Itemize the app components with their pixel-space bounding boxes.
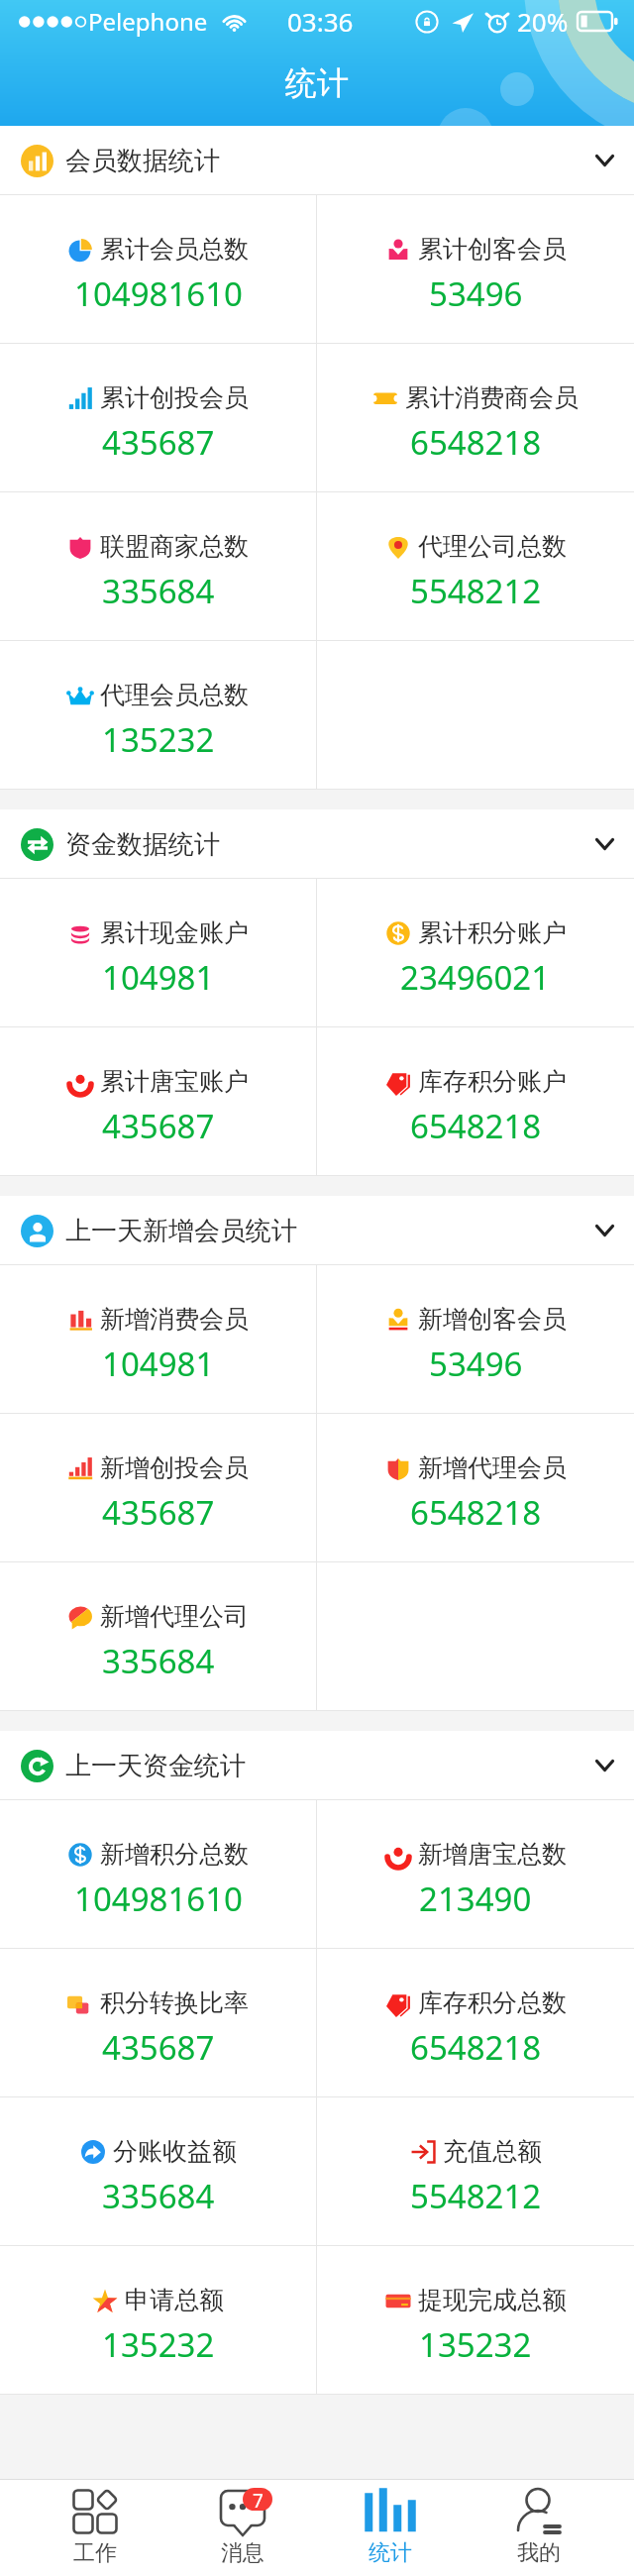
staticText: 代理会员总数	[100, 680, 249, 710]
staticText: 分账收益额	[113, 2136, 237, 2167]
button[interactable]: 申请总额	[0, 2246, 316, 2395]
staticText: 新增积分总数	[100, 1839, 249, 1870]
button[interactable]: 累计会员总数	[0, 195, 316, 344]
staticText: 提现完成总额	[418, 2285, 567, 2315]
button[interactable]: 联盟商家总数	[0, 492, 316, 641]
button[interactable]: 累计创投会员	[0, 344, 316, 492]
button[interactable]: 新增创客会员	[317, 1265, 634, 1414]
staticText: 53496	[429, 271, 523, 316]
button[interactable]: 累计唐宝账户	[0, 1027, 316, 1176]
staticText: 新增消费会员	[100, 1304, 249, 1335]
button[interactable]: 提现完成总额	[317, 2246, 634, 2395]
button[interactable]: 7	[168, 2480, 316, 2576]
staticText: 我的	[517, 2539, 561, 2567]
staticText: 104981	[102, 1342, 215, 1386]
button[interactable]: 库存积分账户	[317, 1027, 634, 1176]
staticText: 会员数据统计	[65, 145, 220, 177]
staticText: 库存积分账户	[418, 1066, 567, 1097]
staticText: 53496	[429, 1342, 523, 1386]
button[interactable]: 新增唐宝总数	[317, 1800, 634, 1949]
staticText: 6548218	[410, 1104, 542, 1148]
button[interactable]: 上一天资金统计	[0, 1731, 634, 1800]
staticText: 7	[253, 2488, 264, 2511]
button[interactable]: 我的	[465, 2480, 613, 2576]
staticText: 充值总额	[443, 2136, 542, 2167]
button[interactable]: 累计积分账户	[317, 879, 634, 1027]
staticText: 累计创投会员	[100, 382, 249, 413]
staticText: 23496021	[400, 955, 551, 1000]
button[interactable]: 积分转换比率	[0, 1949, 316, 2097]
staticText: 积分转换比率	[100, 1987, 249, 2018]
staticText: 5548212	[410, 569, 542, 613]
staticText: 上一天新增会员统计	[65, 1215, 297, 1247]
button[interactable]: 新增消费会员	[0, 1265, 316, 1414]
staticText: 消息	[221, 2539, 264, 2567]
staticText: 213490	[419, 1877, 532, 1921]
staticText: 累计消费商会员	[405, 382, 579, 413]
staticText: 累计积分账户	[418, 917, 567, 948]
button[interactable]: 资金数据统计	[0, 809, 634, 879]
staticText: 135232	[419, 2322, 532, 2367]
staticText: 135232	[102, 2322, 215, 2367]
staticText: 统计	[369, 2539, 412, 2567]
staticText: 工作	[73, 2539, 117, 2567]
button[interactable]: 分账收益额	[0, 2097, 316, 2246]
staticText: 累计会员总数	[100, 234, 249, 265]
button[interactable]: 代理公司总数	[317, 492, 634, 641]
staticText: 库存积分总数	[418, 1987, 567, 2018]
staticText: 435687	[102, 420, 215, 465]
button[interactable]: 库存积分总数	[317, 1949, 634, 2097]
button[interactable]: 新增代理公司	[0, 1562, 316, 1711]
button[interactable]: 上一天新增会员统计	[0, 1196, 634, 1265]
button[interactable]: 累计消费商会员	[317, 344, 634, 492]
staticText: 335684	[102, 1639, 215, 1683]
button[interactable]: 累计创客会员	[317, 195, 634, 344]
staticText: 累计现金账户	[100, 917, 249, 948]
staticText: 5548212	[410, 2174, 542, 2218]
staticText: 新增创客会员	[418, 1304, 567, 1335]
staticText: 6548218	[410, 2025, 542, 2070]
staticText: 03:36	[287, 4, 354, 39]
button[interactable]: 充值总额	[317, 2097, 634, 2246]
staticText: 代理公司总数	[418, 531, 567, 562]
button[interactable]: 统计	[316, 2480, 465, 2576]
staticText: 6548218	[410, 1490, 542, 1535]
staticText: 104981	[102, 955, 215, 1000]
staticText: 新增创投会员	[100, 1452, 249, 1483]
staticText: 统计	[285, 63, 349, 103]
staticText: 335684	[102, 2174, 215, 2218]
button[interactable]: 代理会员总数	[0, 641, 316, 790]
staticText: Pelephone	[88, 5, 208, 38]
staticText: 435687	[102, 1104, 215, 1148]
staticText: 435687	[102, 2025, 215, 2070]
staticText: 135232	[102, 717, 215, 762]
staticText: 上一天资金统计	[65, 1750, 246, 1782]
staticText: 20%	[517, 4, 569, 39]
staticText: 104981610	[74, 271, 243, 316]
staticText: 104981610	[74, 1877, 243, 1921]
staticText: 新增代理公司	[100, 1601, 249, 1632]
staticText: 资金数据统计	[65, 828, 220, 861]
staticText: 申请总额	[125, 2285, 224, 2315]
button[interactable]: 累计现金账户	[0, 879, 316, 1027]
staticText: 累计创客会员	[418, 234, 567, 265]
button[interactable]: 会员数据统计	[0, 126, 634, 195]
staticText: 联盟商家总数	[100, 531, 249, 562]
staticText: 累计唐宝账户	[100, 1066, 249, 1097]
staticText: 335684	[102, 569, 215, 613]
button[interactable]: 新增代理会员	[317, 1414, 634, 1562]
button[interactable]: 新增创投会员	[0, 1414, 316, 1562]
staticText: 435687	[102, 1490, 215, 1535]
staticText: 新增代理会员	[418, 1452, 567, 1483]
button[interactable]: 工作	[21, 2480, 168, 2576]
staticText: 新增唐宝总数	[418, 1839, 567, 1870]
button[interactable]: 新增积分总数	[0, 1800, 316, 1949]
staticText: 6548218	[410, 420, 542, 465]
